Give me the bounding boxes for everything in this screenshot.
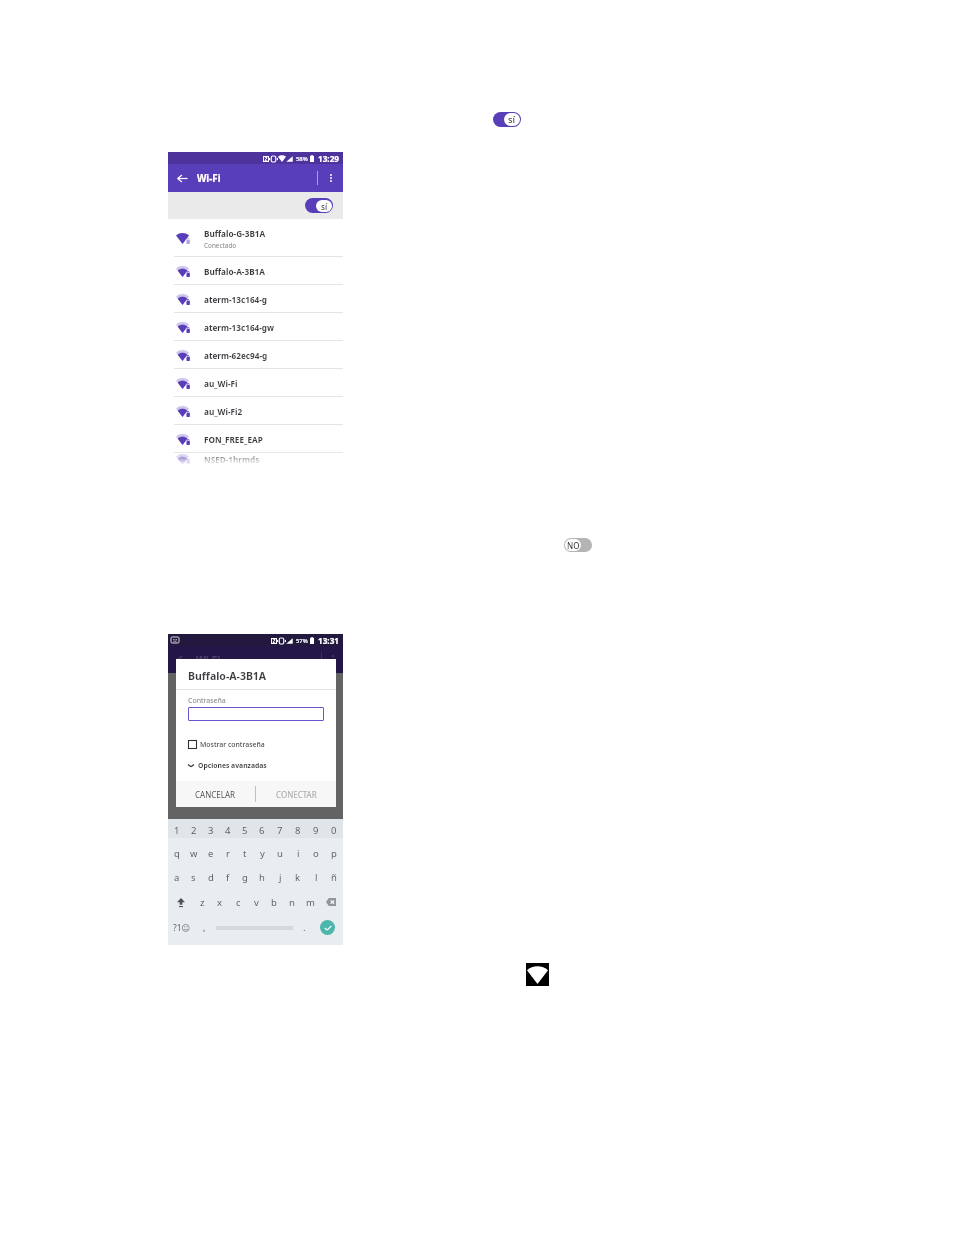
staticText: aterm-13c164-gw [204, 322, 275, 333]
staticText: s [191, 871, 196, 884]
button[interactable]: Backspace [319, 890, 343, 914]
staticText: Contraseña [188, 696, 226, 706]
button[interactable]: g [236, 865, 253, 889]
staticText: aterm-13c164-g [204, 294, 268, 305]
button[interactable]: Enter [312, 910, 343, 945]
button[interactable]: 3 [202, 821, 219, 840]
button[interactable]: aterm-62ec94-g [168, 341, 343, 369]
staticText: aterm-62ec94-g [204, 350, 268, 361]
button[interactable]: m [301, 890, 319, 914]
staticText: sí [508, 113, 516, 126]
button[interactable]: ñ [325, 865, 343, 889]
staticText: Buffalo-A-3B1A [204, 266, 265, 277]
staticText: n [289, 896, 295, 909]
button[interactable]: z [193, 890, 211, 914]
button[interactable]: j [271, 865, 289, 889]
button[interactable]: q [168, 841, 185, 865]
button[interactable]: h [253, 865, 271, 889]
staticText: v [254, 896, 259, 909]
staticText: ñ [331, 871, 337, 884]
staticText: Opciones avanzadas [198, 761, 267, 770]
button[interactable]: p [325, 841, 343, 865]
button[interactable]: ?1☺ [168, 910, 196, 945]
button[interactable]: aterm-13c164-g [168, 285, 343, 313]
button[interactable]: v [247, 890, 265, 914]
staticText: r [226, 847, 230, 860]
button[interactable]: 7 [271, 821, 289, 840]
button[interactable]: x [211, 890, 229, 914]
button[interactable]: f [219, 865, 236, 889]
staticText: . [303, 921, 306, 934]
staticText: l [315, 871, 318, 884]
staticText: Conectado [204, 241, 237, 250]
staticText: Wi-Fi [197, 172, 221, 185]
staticText: c [236, 896, 241, 909]
button[interactable]: CANCELAR [176, 781, 255, 807]
staticText: y [260, 847, 265, 860]
button[interactable]: 0 [325, 821, 343, 840]
staticText: 58% [296, 155, 308, 163]
staticText: Buffalo-G-3B1A [204, 228, 266, 239]
button[interactable]: Switch on [305, 198, 333, 213]
staticText: o [313, 847, 319, 860]
button[interactable]: n [283, 890, 301, 914]
button[interactable]: au_Wi-Fi2 [168, 397, 343, 425]
button[interactable]: 5 [236, 821, 253, 840]
button[interactable]: 2 [185, 821, 202, 840]
button[interactable]: Shift [168, 890, 193, 914]
button[interactable]: 8 [289, 821, 307, 840]
button[interactable]: Buffalo-A-3B1A [168, 257, 343, 285]
button[interactable]: Switch off [564, 538, 592, 552]
button[interactable]: d [202, 865, 219, 889]
button[interactable]: r [219, 841, 236, 865]
staticText: FON_FREE_EAP [204, 434, 263, 445]
staticText: u [277, 847, 283, 860]
button[interactable]: i [289, 841, 307, 865]
button[interactable]: o [307, 841, 325, 865]
staticText: q [174, 847, 180, 860]
button[interactable]: w [185, 841, 202, 865]
staticText: e [208, 847, 214, 860]
staticText: i [297, 847, 300, 860]
button[interactable]: Buffalo-G-3B1A [168, 219, 343, 257]
button[interactable]: Back [168, 164, 196, 192]
staticText: ?1☺ [173, 922, 191, 934]
button[interactable]: . [296, 910, 312, 945]
button[interactable]: aterm-13c164-gw [168, 313, 343, 341]
staticText: x [217, 896, 223, 909]
button[interactable]: 4 [219, 821, 236, 840]
staticText: 5 [242, 824, 248, 837]
button[interactable]: Space [212, 910, 296, 945]
button[interactable]: Wi-Fi [526, 963, 549, 986]
button[interactable]: , [196, 910, 212, 945]
staticText: NO [567, 540, 580, 551]
button[interactable]: u [271, 841, 289, 865]
button[interactable]: More options [318, 164, 343, 192]
staticText: 13:29 [318, 153, 340, 164]
button[interactable]: l [307, 865, 325, 889]
button[interactable]: Switch on [493, 112, 521, 127]
button[interactable]: FON_FREE_EAP [168, 425, 343, 453]
button[interactable]: au_Wi-Fi [168, 369, 343, 397]
staticText: au_Wi-Fi2 [204, 406, 243, 417]
button[interactable]: e [202, 841, 219, 865]
button[interactable]: k [289, 865, 307, 889]
button[interactable]: 1 [168, 821, 185, 840]
button[interactable]: Opciones avanzadas [188, 761, 267, 770]
staticText: w [190, 847, 198, 860]
button[interactable]: s [185, 865, 202, 889]
staticText: t [243, 847, 247, 860]
button[interactable]: b [265, 890, 283, 914]
button[interactable]: c [229, 890, 247, 914]
button[interactable]: y [253, 841, 271, 865]
button[interactable]: 9 [307, 821, 325, 840]
staticText: Mostrar contraseña [200, 740, 265, 749]
button[interactable]: a [168, 865, 185, 889]
button[interactable]: Mostrar contraseña [188, 740, 265, 749]
staticText: 1 [174, 824, 180, 837]
staticText: 3 [208, 824, 214, 837]
button[interactable]: CONECTAR [256, 781, 336, 807]
button[interactable]: t [236, 841, 253, 865]
button[interactable]: 6 [253, 821, 271, 840]
staticText: , [203, 921, 206, 934]
